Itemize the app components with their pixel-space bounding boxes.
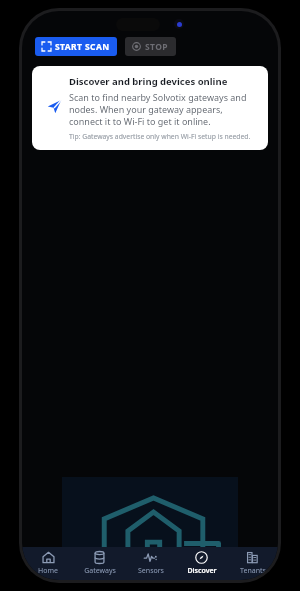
staticText: Discover bbox=[187, 566, 217, 576]
staticText: START SCAN bbox=[55, 41, 110, 53]
staticText: Scan to find nearby Solvotix gateways an… bbox=[69, 91, 258, 127]
button[interactable]: Sensors bbox=[125, 547, 176, 580]
button[interactable]: START SCAN bbox=[35, 37, 117, 56]
button[interactable]: Discover bbox=[176, 547, 227, 580]
button[interactable]: Home bbox=[22, 547, 74, 580]
button[interactable]: Discover and bring devices online bbox=[32, 66, 268, 150]
button[interactable]: Gateways bbox=[74, 547, 125, 580]
staticText: STOP bbox=[145, 41, 169, 53]
staticText: Discover and bring devices online bbox=[69, 75, 228, 88]
staticText: Tenants bbox=[240, 566, 266, 576]
staticText: Gateways bbox=[84, 566, 116, 576]
staticText: Home bbox=[38, 566, 58, 576]
staticText: Sensors bbox=[138, 566, 164, 576]
button[interactable]: STOP bbox=[125, 37, 176, 56]
staticText: Tip: Gateways advertise only when Wi-Fi … bbox=[69, 132, 251, 141]
button[interactable]: Tenants bbox=[227, 547, 278, 580]
